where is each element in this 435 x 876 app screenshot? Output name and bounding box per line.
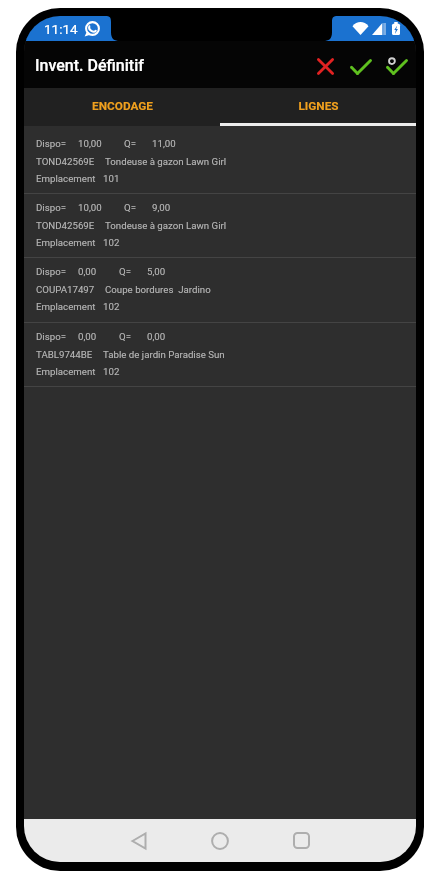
staticText: Emplacement: [36, 237, 96, 248]
staticText: 10,00: [78, 138, 102, 149]
staticText: 11,00: [152, 138, 176, 149]
staticText: Table de jardin Paradise Sun: [103, 349, 225, 360]
staticText: 102: [103, 237, 120, 248]
button[interactable]: Dispo=: [24, 258, 416, 322]
button[interactable]: Valider: [343, 43, 379, 90]
staticText: 0,00: [147, 331, 166, 342]
staticText: Q=: [119, 331, 131, 342]
staticText: Emplacement: [36, 366, 96, 377]
button[interactable]: Synchroniser: [379, 43, 415, 90]
staticText: 0,00: [78, 266, 97, 277]
staticText: 102: [103, 301, 120, 312]
staticText: TOND42569E: [36, 156, 95, 167]
staticText: 10,00: [78, 202, 102, 213]
staticText: COUPA17497: [36, 284, 95, 295]
staticText: Q=: [119, 266, 131, 277]
staticText: Emplacement: [36, 301, 96, 312]
staticText: Dispo=: [36, 202, 66, 213]
staticText: Tondeuse à gazon Lawn Girl: [105, 156, 227, 167]
staticText: ENCODAGE: [92, 99, 153, 113]
staticText: Tondeuse à gazon Lawn Girl: [105, 220, 227, 231]
staticText: Coupe bordures Jardino: [105, 284, 211, 295]
staticText: Dispo=: [36, 331, 66, 342]
staticText: TABL9744BE: [36, 349, 93, 360]
button[interactable]: Dispo=: [24, 194, 416, 257]
button[interactable]: Dispo=: [24, 130, 416, 193]
button[interactable]: Dispo=: [24, 323, 416, 386]
staticText: Dispo=: [36, 266, 66, 277]
staticText: Emplacement: [36, 173, 96, 184]
button[interactable]: Retour: [115, 819, 163, 862]
button[interactable]: Annuler: [307, 43, 343, 90]
staticText: Q=: [124, 202, 136, 213]
staticText: 9,00: [152, 202, 171, 213]
button[interactable]: Applications récentes: [277, 819, 325, 862]
staticText: 101: [103, 173, 120, 184]
button[interactable]: Accueil: [196, 819, 244, 862]
staticText: Q=: [124, 138, 136, 149]
staticText: LIGNES: [298, 99, 339, 113]
button[interactable]: LIGNES: [220, 88, 416, 126]
staticText: 0,00: [78, 331, 97, 342]
staticText: Invent. Définitif: [35, 56, 144, 75]
staticText: Dispo=: [36, 138, 66, 149]
staticText: 11:14: [44, 21, 78, 37]
staticText: TOND42569E: [36, 220, 95, 231]
button[interactable]: ENCODAGE: [24, 88, 220, 126]
staticText: 5,00: [147, 266, 166, 277]
staticText: 102: [103, 366, 120, 377]
